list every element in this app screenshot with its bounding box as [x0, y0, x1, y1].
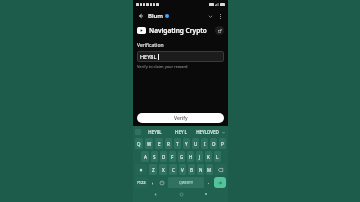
- button[interactable]: C: [169, 164, 177, 175]
- button[interactable]: Backspace: [215, 164, 226, 175]
- button[interactable]: Period: [205, 176, 213, 189]
- button[interactable]: I: [201, 138, 208, 149]
- staticText: S: [153, 154, 156, 160]
- staticText: O: [212, 141, 216, 147]
- button[interactable]: K: [205, 151, 212, 162]
- button[interactable]: S: [151, 151, 158, 162]
- button[interactable]: M: [206, 164, 213, 175]
- staticText: R: [167, 141, 170, 147]
- staticText: L: [216, 154, 219, 160]
- staticText: M: [207, 167, 212, 173]
- staticText: Verification: [137, 42, 164, 49]
- staticText: ,: [152, 179, 154, 186]
- staticText: K: [207, 154, 210, 160]
- button[interactable]: E: [155, 138, 163, 149]
- button[interactable]: More suggestions: [220, 129, 226, 135]
- staticText: Y: [185, 141, 188, 147]
- staticText: Verify to claim your reward: [137, 64, 188, 69]
- staticText: Verify: [174, 115, 188, 122]
- staticText: T: [176, 141, 179, 147]
- button[interactable]: Expand: [205, 11, 215, 21]
- staticText: B: [190, 167, 193, 173]
- button[interactable]: H: [187, 151, 194, 162]
- staticText: J: [199, 154, 201, 160]
- button[interactable]: Emoji: [157, 176, 167, 189]
- staticText: ?123: [137, 180, 146, 185]
- staticText: U: [194, 141, 198, 147]
- button[interactable]: Y: [183, 138, 190, 149]
- button[interactable]: G: [178, 151, 185, 162]
- button[interactable]: Comma: [149, 176, 157, 189]
- button[interactable]: N: [197, 164, 204, 175]
- button[interactable]: B: [188, 164, 195, 175]
- staticText: P: [221, 141, 224, 147]
- staticText: X: [162, 167, 165, 173]
- staticText: HEY8L: [140, 53, 157, 60]
- button[interactable]: Open external link: [215, 26, 224, 35]
- button[interactable]: V: [179, 164, 186, 175]
- button[interactable]: Enter: [214, 177, 226, 188]
- button[interactable]: Z: [149, 164, 157, 175]
- button[interactable]: Shift: [135, 164, 147, 175]
- button[interactable]: HEY8L: [137, 51, 224, 62]
- button[interactable]: Recent apps: [202, 190, 210, 198]
- button[interactable]: ?123: [135, 177, 148, 188]
- staticText: Navigating Crypto: [149, 26, 207, 35]
- staticText: QWERTY: [179, 180, 194, 185]
- staticText: I: [204, 141, 206, 147]
- button[interactable]: Home: [177, 190, 185, 198]
- button[interactable]: R: [165, 138, 172, 149]
- button[interactable]: Space: [168, 177, 204, 188]
- staticText: A: [144, 154, 147, 160]
- staticText: H: [189, 154, 193, 160]
- button[interactable]: More options: [215, 11, 225, 21]
- staticText: W: [147, 141, 152, 147]
- button[interactable]: J: [196, 151, 203, 162]
- staticText: .: [208, 179, 210, 186]
- button[interactable]: F: [169, 151, 176, 162]
- button[interactable]: T: [174, 138, 181, 149]
- staticText: C: [172, 167, 175, 173]
- staticText: G: [180, 154, 184, 160]
- button[interactable]: Back: [151, 190, 159, 198]
- staticText: V: [181, 167, 184, 173]
- button[interactable]: A: [141, 151, 149, 162]
- button[interactable]: HEY8L: [141, 126, 168, 137]
- button[interactable]: U: [192, 138, 199, 149]
- button[interactable]: O: [210, 138, 217, 149]
- button[interactable]: P: [219, 138, 226, 149]
- button[interactable]: Back: [136, 11, 146, 21]
- staticText: N: [199, 167, 203, 173]
- staticText: E: [158, 141, 161, 147]
- button[interactable]: X: [159, 164, 167, 175]
- staticText: F: [171, 154, 174, 160]
- button[interactable]: Verify: [137, 113, 224, 123]
- button[interactable]: L: [214, 151, 221, 162]
- button[interactable]: W: [145, 138, 153, 149]
- staticText: Blum: [148, 12, 163, 20]
- staticText: D: [162, 154, 166, 160]
- staticText: HEY L: [175, 129, 187, 135]
- staticText: Q: [137, 141, 141, 147]
- staticText: Z: [152, 167, 155, 173]
- button[interactable]: Q: [135, 138, 143, 149]
- staticText: HEYLOVED: [196, 129, 219, 135]
- button[interactable]: Navigating Crypto: [137, 26, 215, 35]
- button[interactable]: HEY L: [168, 126, 194, 137]
- button[interactable]: D: [160, 151, 167, 162]
- button[interactable]: HEYLOVED: [194, 126, 220, 137]
- staticText: HEY8L: [148, 129, 162, 135]
